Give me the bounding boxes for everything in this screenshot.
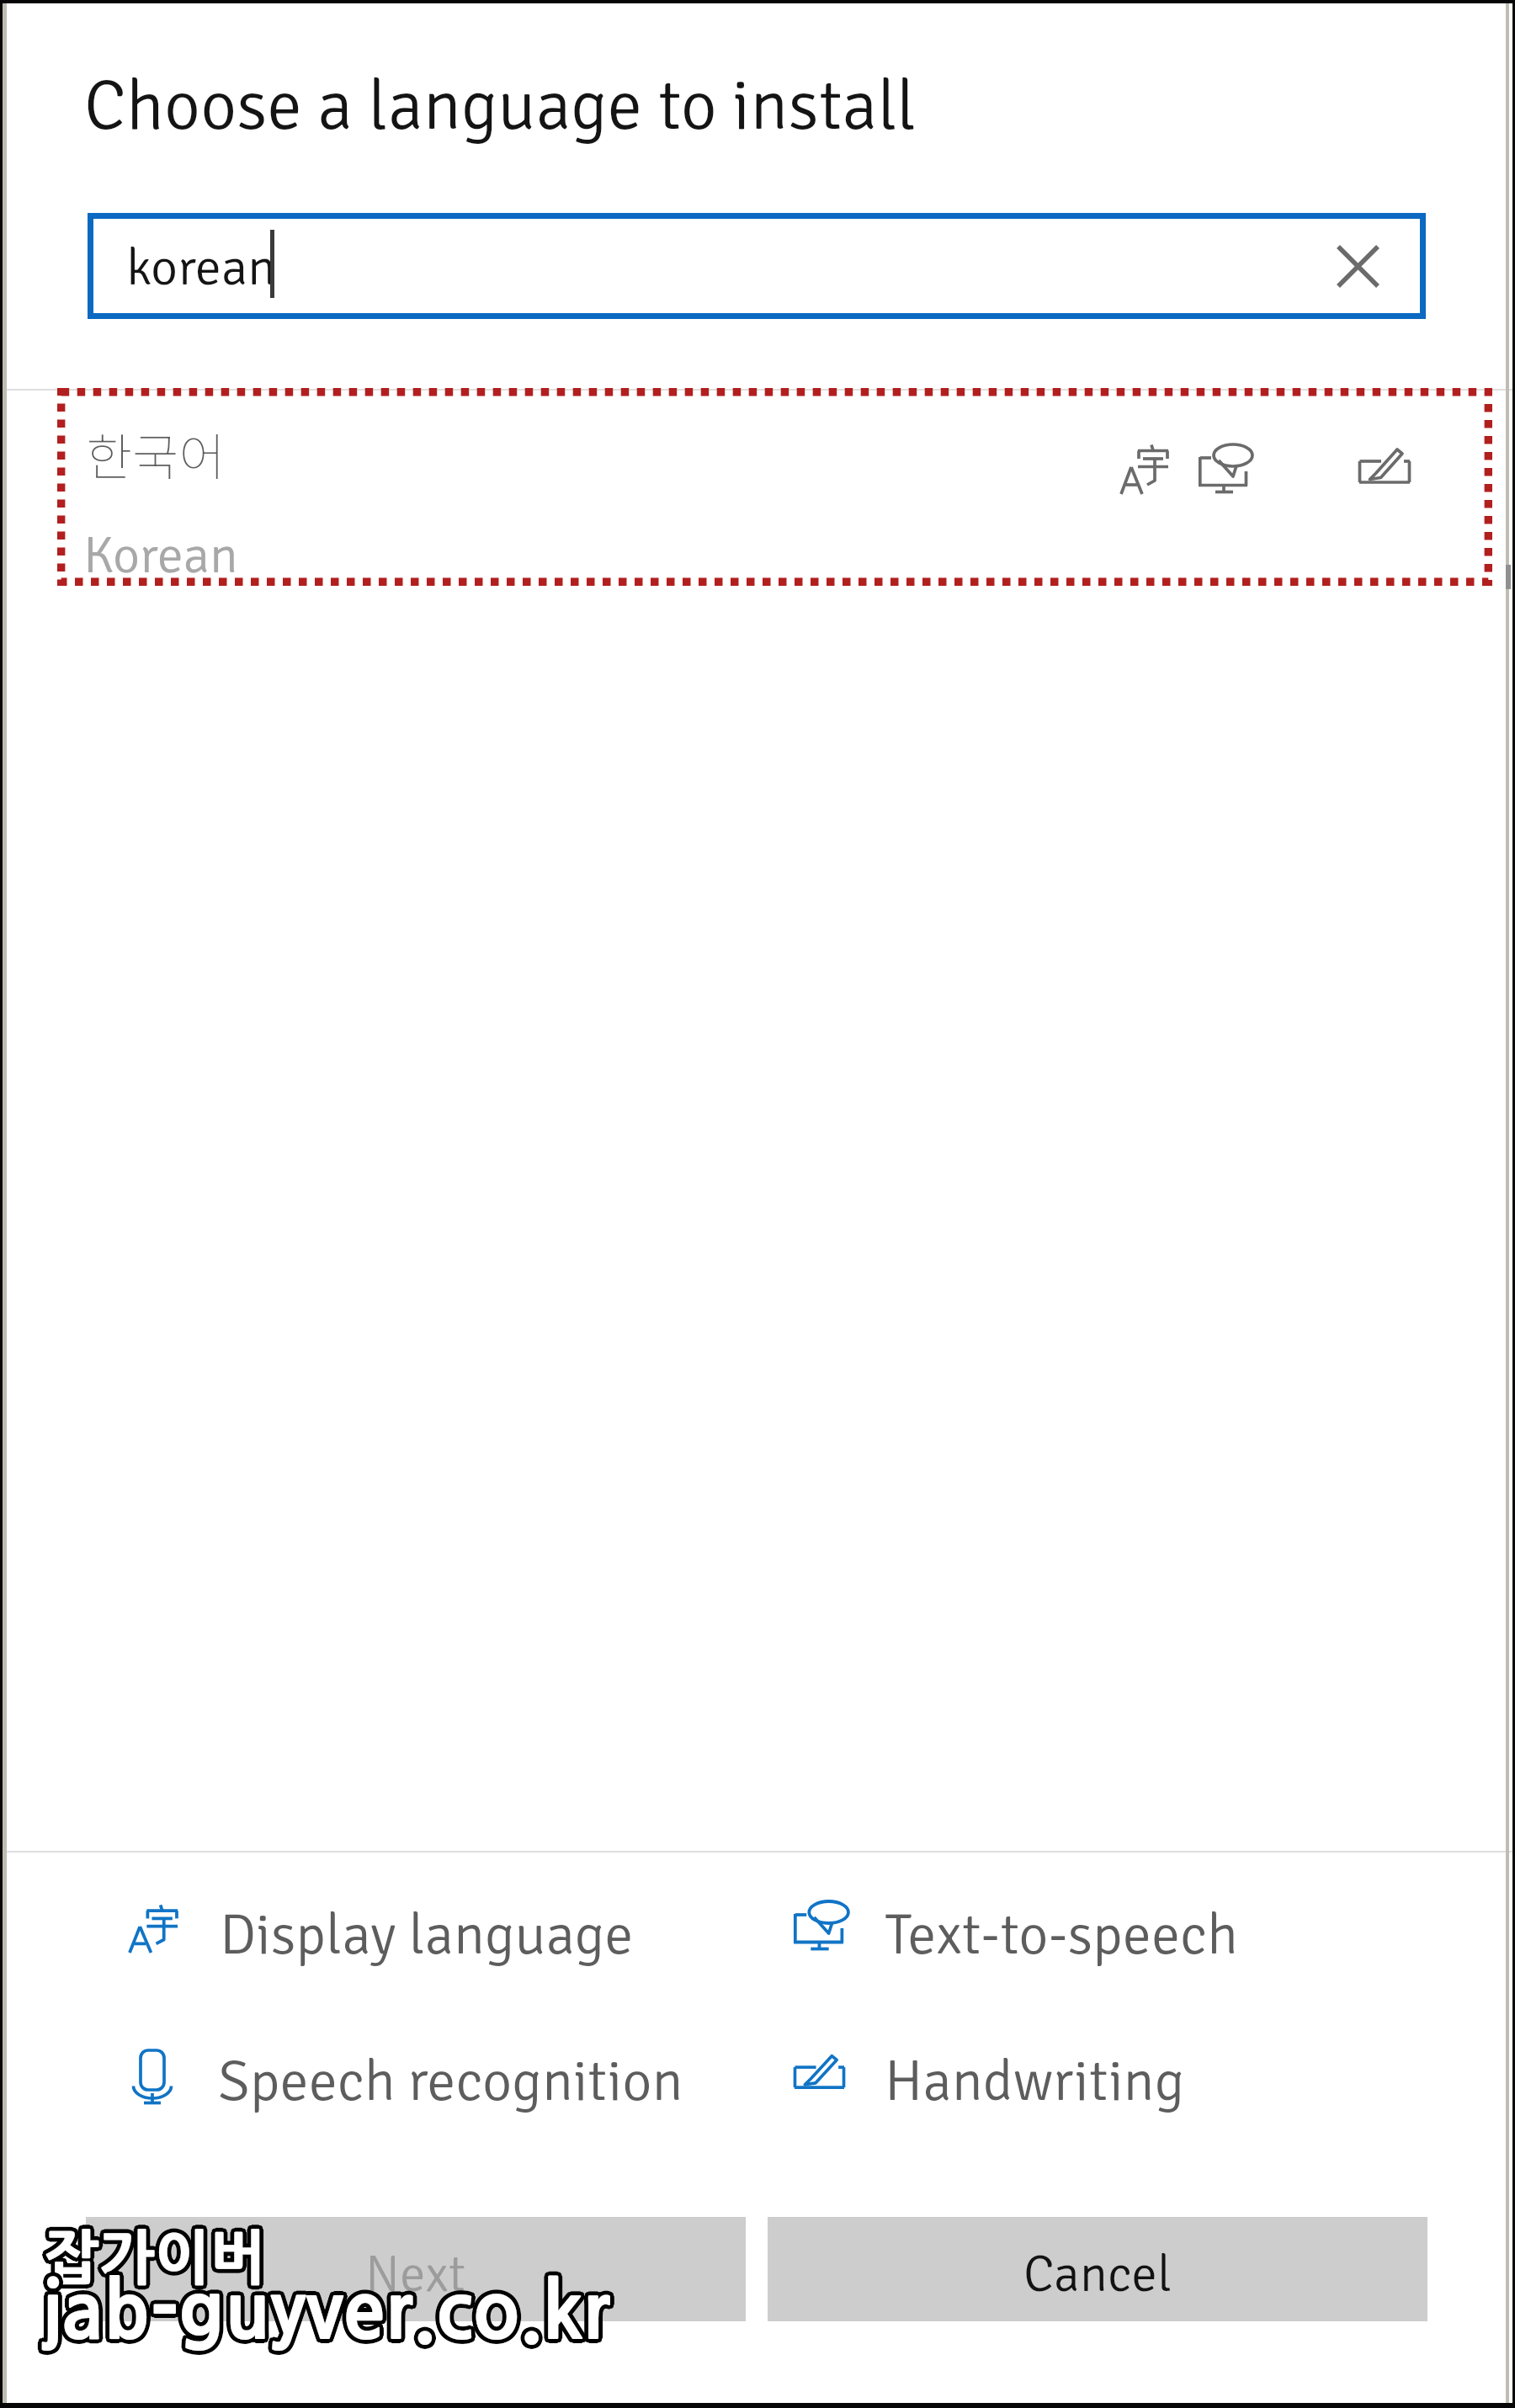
button[interactable]: Text-to-speech available [1199, 444, 1253, 494]
staticText: jab-guyver.co.kr [39, 2272, 609, 2349]
button[interactable]: Cancel [768, 2217, 1427, 2321]
staticText: jab-guyver.co.kr [45, 2273, 614, 2350]
staticText: jab-guyver.co.kr [41, 2277, 611, 2353]
staticText: 잡가이버 [45, 2230, 267, 2288]
staticText: 잡가이버 [45, 2229, 267, 2288]
button[interactable] [780, 1884, 1381, 1976]
staticText: jab-guyver.co.kr [40, 2274, 609, 2351]
staticText: 잡가이버 [48, 2229, 270, 2288]
staticText: 잡가이버 [40, 2227, 263, 2286]
staticText: jab-guyver.co.kr [39, 2277, 609, 2353]
staticText: 잡가이버 [46, 2231, 268, 2290]
staticText: 잡가이버 [42, 2227, 264, 2286]
button[interactable]: korean [88, 213, 1426, 319]
staticText: jab-guyver.co.kr [38, 2272, 608, 2348]
button[interactable]: Display language available [1121, 444, 1168, 494]
staticText: Display language [220, 1900, 634, 1970]
staticText: 잡가이버 [45, 2228, 267, 2287]
staticText: 잡가이버 [46, 2229, 268, 2288]
staticText: jab-guyver.co.kr [40, 2277, 610, 2353]
staticText: 잡가이버 [45, 2230, 268, 2288]
staticText: 잡가이버 [45, 2229, 268, 2288]
staticText: 잡가이버 [41, 2230, 263, 2288]
staticText: 잡가이버 [46, 2232, 268, 2291]
button[interactable] [119, 2033, 715, 2125]
staticText: jab-guyver.co.kr [38, 2276, 608, 2352]
staticText: jab-guyver.co.kr [41, 2271, 611, 2347]
staticText: jab-guyver.co.kr [40, 2274, 610, 2351]
staticText: 잡가이버 [43, 2231, 265, 2290]
staticText: 잡가이버 [44, 2228, 266, 2287]
staticText: 잡가이버 [41, 2226, 263, 2285]
staticText: jab-guyver.co.kr [44, 2272, 614, 2349]
button[interactable]: Clear search [1311, 220, 1404, 312]
staticText: 잡가이버 [45, 2231, 268, 2290]
staticText: 잡가이버 [42, 2229, 264, 2288]
staticText: jab-guyver.co.kr [40, 2272, 609, 2349]
staticText: jab-guyver.co.kr [44, 2276, 614, 2352]
staticText: 잡가이버 [45, 2227, 267, 2286]
staticText: jab-guyver.co.kr [43, 2271, 613, 2347]
staticText: Speech recognition [218, 2046, 683, 2117]
staticText: 잡가이버 [43, 2228, 265, 2287]
staticText: jab-guyver.co.kr [39, 2271, 609, 2347]
staticText: jab-guyver.co.kr [41, 2276, 611, 2352]
staticText: jab-guyver.co.kr [41, 2272, 611, 2349]
staticText: 잡가이버 [46, 2230, 268, 2288]
staticText: 잡가이버 [41, 2228, 263, 2287]
staticText: 잡가이버 [44, 2226, 266, 2285]
staticText: jab-guyver.co.kr [44, 2272, 614, 2348]
staticText: 잡가이버 [42, 2228, 264, 2287]
staticText: 잡가이버 [45, 2226, 268, 2285]
staticText: jab-guyver.co.kr [40, 2271, 610, 2347]
staticText: jab-guyver.co.kr [42, 2277, 612, 2353]
staticText: jab-guyver.co.kr [40, 2270, 610, 2347]
staticText: jab-guyver.co.kr [43, 2270, 613, 2347]
staticText: 잡가이버 [44, 2233, 266, 2292]
staticText: Next [365, 2243, 466, 2306]
staticText: jab-guyver.co.kr [41, 2275, 611, 2352]
staticText: 잡가이버 [41, 2232, 263, 2291]
staticText: 잡가이버 [47, 2229, 269, 2288]
staticText: jab-guyver.co.kr [44, 2277, 614, 2353]
staticText: 잡가이버 [42, 2230, 264, 2288]
staticText: jab-guyver.co.kr [45, 2274, 614, 2351]
staticText: 잡가이버 [40, 2231, 263, 2290]
staticText: jab-guyver.co.kr [41, 2274, 611, 2351]
staticText: jab-guyver.co.kr [43, 2274, 613, 2351]
staticText: 잡가이버 [45, 2228, 268, 2287]
staticText: jab-guyver.co.kr [42, 2271, 612, 2347]
button[interactable]: 한국어 [61, 392, 1490, 592]
staticText: jab-guyver.co.kr [45, 2276, 614, 2352]
staticText: jab-guyver.co.kr [40, 2272, 610, 2348]
staticText: jab-guyver.co.kr [43, 2277, 613, 2353]
staticText: 잡가이버 [41, 2225, 263, 2284]
staticText: 잡가이버 [41, 2227, 263, 2286]
staticText: 잡가이버 [45, 2232, 267, 2291]
staticText: jab-guyver.co.kr [45, 2275, 614, 2352]
staticText: jab-guyver.co.kr [41, 2270, 611, 2347]
staticText: jab-guyver.co.kr [40, 2272, 610, 2349]
staticText: jab-guyver.co.kr [40, 2275, 609, 2352]
button[interactable] [780, 2033, 1381, 2125]
staticText: jab-guyver.co.kr [41, 2269, 611, 2346]
staticText: jab-guyver.co.kr [38, 2275, 608, 2352]
button[interactable]: Next [86, 2217, 746, 2321]
staticText: 잡가이버 [46, 2227, 268, 2286]
staticText: 잡가이버 [40, 2226, 263, 2285]
staticText: 잡가이버 [42, 2231, 264, 2290]
button[interactable]: Handwriting available [1358, 443, 1411, 485]
staticText: 잡가이버 [45, 2231, 267, 2290]
staticText: 잡가이버 [42, 2230, 264, 2289]
staticText: jab-guyver.co.kr [43, 2273, 613, 2350]
staticText: jab-guyver.co.kr [40, 2273, 610, 2350]
staticText: jab-guyver.co.kr [40, 2272, 609, 2348]
staticText: 잡가이버 [40, 2230, 263, 2288]
staticText: jab-guyver.co.kr [42, 2272, 612, 2348]
staticText: 잡가이버 [44, 2227, 266, 2286]
staticText: jab-guyver.co.kr [42, 2272, 612, 2349]
staticText: 잡가이버 [46, 2230, 268, 2289]
button[interactable] [116, 1887, 716, 1980]
staticText: 잡가이버 [43, 2225, 265, 2284]
staticText: 잡가이버 [41, 2231, 263, 2290]
